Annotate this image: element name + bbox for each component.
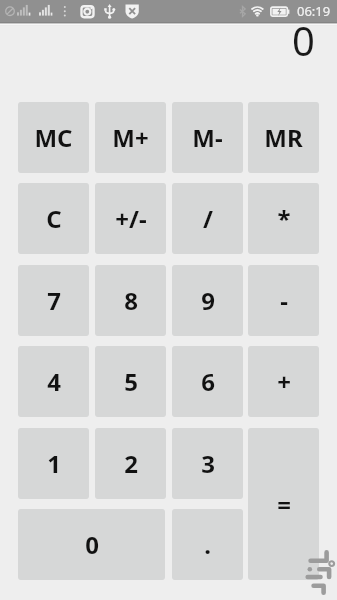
- staticText: +/-: [115, 202, 147, 235]
- staticText: 0: [85, 528, 99, 561]
- staticText: -: [280, 284, 288, 317]
- button[interactable]: C: [18, 183, 89, 254]
- button[interactable]: 5: [95, 346, 166, 417]
- staticText: *: [277, 202, 291, 235]
- staticText: 3: [201, 447, 215, 480]
- staticText: M-: [192, 121, 223, 154]
- button[interactable]: 7: [18, 265, 89, 336]
- button[interactable]: *: [248, 183, 319, 254]
- staticText: M+: [112, 121, 149, 154]
- button[interactable]: MC: [18, 102, 89, 173]
- staticText: .: [204, 528, 211, 561]
- button[interactable]: -: [248, 265, 319, 336]
- staticText: 6: [201, 365, 215, 398]
- button[interactable]: MR: [248, 102, 319, 173]
- button[interactable]: +: [248, 346, 319, 417]
- button[interactable]: 6: [172, 346, 243, 417]
- staticText: 06:19: [297, 2, 331, 20]
- staticText: 8: [124, 284, 138, 317]
- button[interactable]: .: [172, 509, 243, 580]
- button[interactable]: M-: [172, 102, 243, 173]
- button[interactable]: 8: [95, 265, 166, 336]
- button[interactable]: M+: [95, 102, 166, 173]
- staticText: +: [277, 365, 291, 398]
- staticText: C: [46, 202, 62, 235]
- staticText: MR: [264, 121, 303, 154]
- button[interactable]: 2: [95, 428, 166, 499]
- staticText: MC: [34, 121, 73, 154]
- staticText: 4: [47, 365, 61, 398]
- button[interactable]: 1: [18, 428, 89, 499]
- staticText: 0: [292, 13, 315, 67]
- staticText: /: [203, 202, 213, 235]
- button[interactable]: 4: [18, 346, 89, 417]
- button[interactable]: 0: [18, 509, 165, 580]
- button[interactable]: 3: [172, 428, 243, 499]
- button[interactable]: =: [248, 428, 319, 580]
- staticText: 7: [47, 284, 61, 317]
- staticText: 9: [201, 284, 215, 317]
- staticText: 2: [124, 447, 138, 480]
- button[interactable]: 9: [172, 265, 243, 336]
- staticText: 1: [47, 447, 61, 480]
- staticText: =: [277, 488, 291, 521]
- button[interactable]: +/-: [95, 183, 166, 254]
- staticText: 5: [124, 365, 138, 398]
- button[interactable]: /: [172, 183, 243, 254]
